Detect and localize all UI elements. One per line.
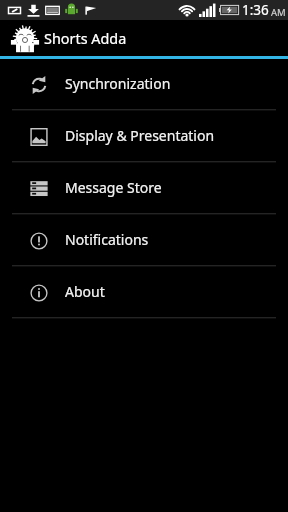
staticText: AM (271, 6, 286, 19)
button[interactable]: Synchronization (0, 59, 288, 111)
staticText: Message Store (65, 178, 162, 197)
staticText: Notifications (65, 230, 149, 249)
staticText: Shorts Adda (44, 29, 127, 49)
button[interactable]: About (0, 267, 288, 319)
staticText: Display & Presentation (65, 126, 215, 145)
staticText: About (65, 282, 105, 301)
button[interactable]: Notifications (0, 215, 288, 267)
staticText: 1:36 (242, 1, 269, 19)
button[interactable]: Message Store (0, 163, 288, 215)
staticText: Synchronization (65, 74, 171, 93)
button[interactable]: Display & Presentation (0, 111, 288, 163)
